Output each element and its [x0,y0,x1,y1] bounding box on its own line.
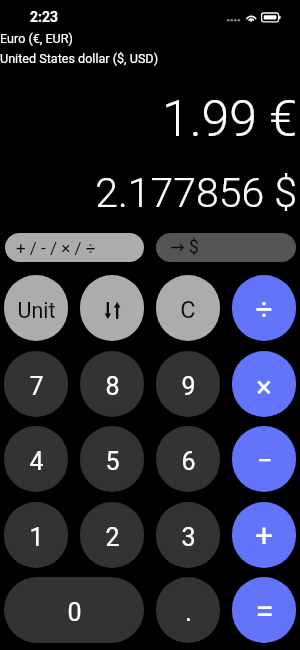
button[interactable]: 5 [80,426,144,492]
button[interactable]: − [232,426,296,492]
staticText: → $ [170,237,199,258]
staticText: 8 [105,372,120,401]
staticText: + / - / × / ÷ [16,238,96,258]
button[interactable]: 6 [156,426,220,492]
staticText: ÷ [255,292,273,327]
button[interactable]: Swap currencies [80,275,144,341]
staticText: 1 [29,523,44,552]
button[interactable]: 2 [80,502,144,568]
staticText: Euro (€, EUR) [0,31,73,46]
staticText: . [185,598,192,627]
button[interactable]: ÷ [232,275,296,341]
staticText: United States dollar ($, USD) [0,51,159,66]
staticText: 6 [181,447,196,476]
button[interactable]: 1 [4,502,68,568]
staticText: = [255,592,274,631]
staticText: 4 [29,447,44,476]
staticText: 2 [105,523,120,552]
staticText: 7 [29,372,44,401]
staticText: 5 [105,447,120,476]
staticText: 2:23 [30,9,59,25]
button[interactable]: Unit [4,275,68,341]
staticText: 0 [67,598,82,627]
button[interactable]: . [156,577,220,643]
button[interactable]: 4 [4,426,68,492]
staticText: + [255,517,273,553]
button[interactable]: 3 [156,502,220,568]
button[interactable]: + [232,502,296,568]
staticText: 1.99 € [0,90,297,149]
button[interactable]: 7 [4,351,68,417]
staticText: C [180,296,196,324]
button[interactable]: = [232,577,296,643]
staticText: 2.177856 $ [0,169,297,217]
button[interactable]: C [156,275,220,341]
button[interactable]: × [232,351,296,417]
staticText: Unit [17,298,56,323]
staticText: 9 [181,372,196,401]
staticText: − [256,444,273,477]
staticText: × [256,370,272,404]
button[interactable]: 8 [80,351,144,417]
button[interactable]: 0 [4,577,144,643]
button[interactable]: + / - / × / ÷ [5,233,144,262]
button[interactable]: → $ [156,233,296,262]
button[interactable]: 9 [156,351,220,417]
other: Status icons [226,9,282,23]
staticText: 3 [181,523,196,552]
